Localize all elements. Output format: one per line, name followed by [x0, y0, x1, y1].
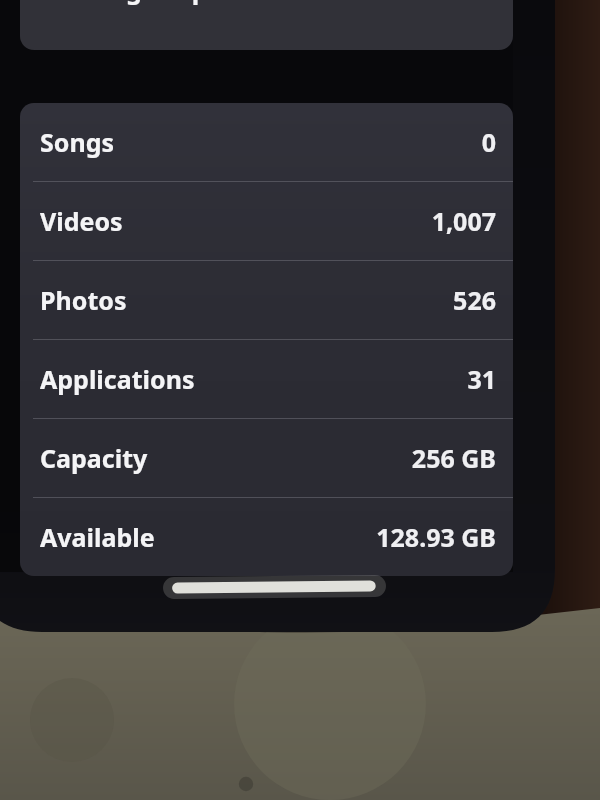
button[interactable]: Videos [20, 182, 513, 260]
staticText: Available [40, 520, 155, 554]
staticText: Songs [40, 125, 115, 159]
staticText: 128.93 GB [376, 520, 496, 554]
staticText: Coverage Expired [40, 0, 257, 6]
button[interactable]: Coverage Expired [20, 0, 513, 50]
staticText: 1,007 [431, 204, 496, 238]
staticText: 31 [467, 362, 496, 396]
staticText: Capacity [40, 441, 148, 475]
button[interactable]: Applications [20, 340, 513, 418]
staticText: Videos [40, 204, 123, 238]
staticText: 0 [481, 125, 496, 159]
button[interactable]: Available [20, 498, 513, 576]
button[interactable]: Songs [20, 103, 513, 181]
staticText: Photos [40, 283, 127, 317]
staticText: 256 GB [411, 441, 496, 475]
staticText: 526 [453, 283, 496, 317]
button[interactable]: Capacity [20, 419, 513, 497]
staticText: Applications [40, 362, 195, 396]
button[interactable]: Photos [20, 261, 513, 339]
